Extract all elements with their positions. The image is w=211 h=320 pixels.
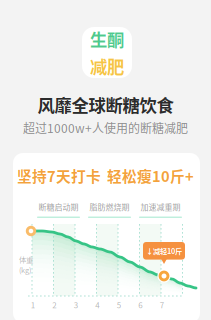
staticText: 脂肪燃烧期 — [89, 201, 129, 213]
staticText: 生酮 — [90, 26, 124, 51]
staticText: 加速减重期 — [140, 201, 180, 213]
staticText: 断糖启动期 — [38, 201, 78, 213]
staticText: 2 — [52, 299, 56, 311]
staticText: 3 — [74, 299, 78, 311]
staticText: 坚持7天打卡 轻松瘦10斤+ — [17, 165, 194, 186]
staticText: 1 — [31, 299, 35, 311]
staticText: 5 — [117, 299, 121, 311]
staticText: ↓减轻10斤 — [146, 245, 182, 256]
staticText: 超过1000w+人使用的断糖减肥 — [23, 119, 188, 136]
staticText: 风靡全球断糖饮食 — [37, 92, 173, 117]
staticText: 4 — [95, 299, 99, 311]
staticText: 减肥 — [90, 53, 124, 79]
staticText: 6 — [138, 299, 142, 311]
staticText: (kg) — [19, 265, 31, 275]
staticText: 7 — [160, 299, 164, 311]
staticText: 体重 — [19, 254, 33, 265]
